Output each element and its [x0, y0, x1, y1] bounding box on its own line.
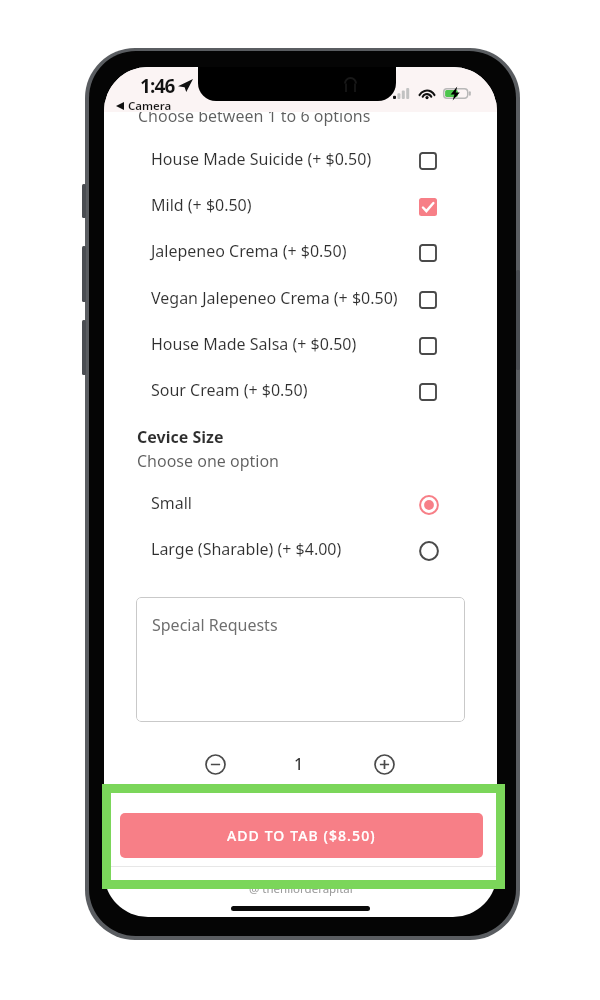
staticText: Choose one option [137, 450, 279, 472]
staticText: Special Requests [152, 614, 278, 636]
staticText: Vegan Jalepeneo Crema (+ $0.50) [151, 287, 398, 309]
button[interactable]: House Made Suicide (+ $0.50) [104, 138, 497, 184]
button[interactable]: Camera [116, 98, 172, 114]
staticText: 1:46 [140, 73, 175, 99]
button[interactable]: House Made Salsa (+ $0.50) [104, 323, 497, 369]
button[interactable]: Increase quantity [367, 747, 402, 782]
staticText: House Made Suicide (+ $0.50) [151, 148, 372, 170]
button[interactable]: Mild (+ $0.50) [104, 184, 497, 230]
staticText: 1 [294, 753, 304, 775]
staticText: House Made Salsa (+ $0.50) [151, 333, 357, 355]
staticText: Jalepeneo Crema (+ $0.50) [151, 240, 347, 262]
staticText: Cevice Size [137, 426, 224, 448]
staticText: Small [151, 492, 192, 514]
staticText: @ thenilorderapital [249, 881, 353, 897]
staticText: Large (Sharable) (+ $4.00) [151, 538, 342, 560]
button[interactable]: Special Requests [136, 597, 465, 722]
staticText: Camera [128, 98, 172, 114]
button[interactable]: Decrease quantity [198, 747, 233, 782]
button[interactable]: Vegan Jalepeneo Crema (+ $0.50) [104, 277, 497, 323]
button[interactable]: Jalepeneo Crema (+ $0.50) [104, 230, 497, 276]
staticText: Mild (+ $0.50) [151, 194, 252, 216]
button[interactable]: Sour Cream (+ $0.50) [104, 369, 497, 415]
staticText: Sour Cream (+ $0.50) [151, 379, 308, 401]
button[interactable]: Large (Sharable) (+ $4.00) [104, 528, 497, 574]
button[interactable]: ADD TO TAB ($8.50) [120, 813, 483, 858]
button[interactable]: Small [104, 482, 497, 528]
staticText: Choose between 1 to 6 options [138, 105, 371, 127]
staticText: ADD TO TAB ($8.50) [227, 826, 376, 845]
